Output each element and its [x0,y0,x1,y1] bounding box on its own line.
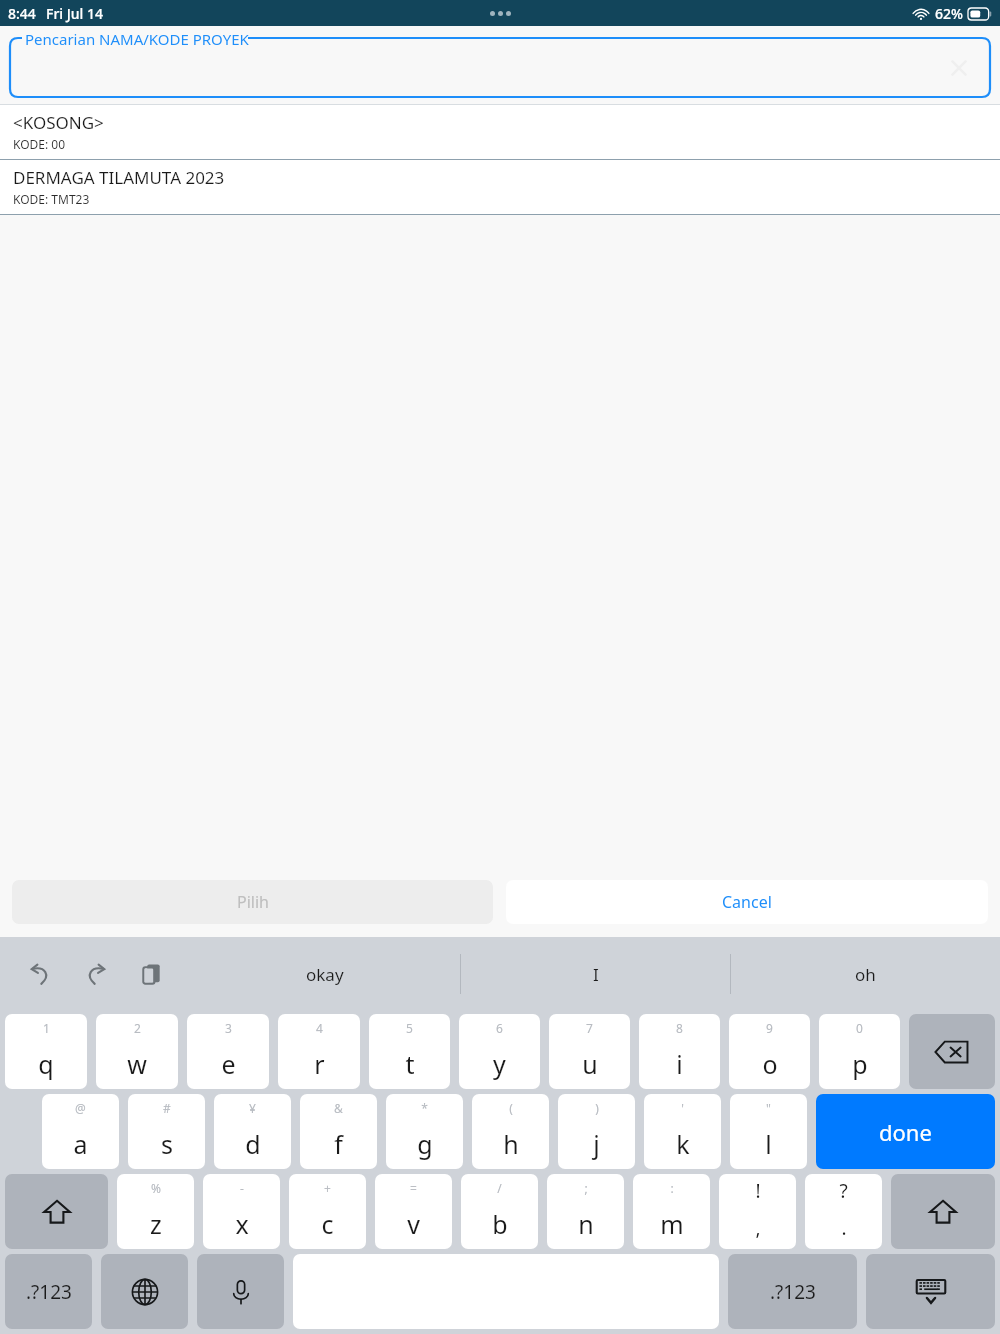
staticText: I [593,963,599,986]
button[interactable]: ? [805,1174,882,1249]
staticText: ; [584,1180,588,1196]
staticText: * [421,1100,428,1116]
staticText: p [852,1047,868,1081]
button[interactable]: ¥ [214,1094,291,1169]
button[interactable]: 1 [5,1014,87,1089]
staticText: b [492,1207,508,1241]
staticText: d [245,1127,261,1161]
staticText: g [417,1127,433,1161]
staticText: 8 [676,1020,683,1036]
button[interactable]: * [386,1094,463,1169]
button[interactable]: ' [644,1094,721,1169]
button[interactable]: & [300,1094,377,1169]
button[interactable]: ; [547,1174,624,1249]
button[interactable]: Pilih [12,880,493,924]
button[interactable]: " [730,1094,807,1169]
button[interactable]: + [289,1174,366,1249]
staticText: ) [595,1100,599,1116]
staticText: .?123 [26,1279,72,1305]
button[interactable]: .?123 [5,1254,92,1329]
staticText: 8:44 [8,4,36,23]
staticText: n [578,1207,594,1241]
staticText: q [38,1047,54,1081]
button[interactable]: 0 [819,1014,900,1089]
staticText: 62% [935,4,963,23]
staticText: 6 [496,1020,503,1036]
button[interactable]: oh [731,949,1000,999]
button[interactable]: okay [190,949,460,999]
button[interactable]: 8 [639,1014,720,1089]
button[interactable]: <KOSONG> [0,105,1000,159]
button[interactable]: Cancel [506,880,988,924]
button[interactable]: Switch language [101,1254,188,1329]
staticText: ' [681,1100,684,1116]
staticText: e [221,1047,236,1081]
staticText: l [765,1127,772,1161]
staticText: s [161,1127,173,1161]
staticText: t [405,1047,415,1081]
staticText: k [676,1127,690,1161]
button[interactable]: / [461,1174,538,1249]
staticText: Fri Jul 14 [46,4,104,23]
button[interactable]: Shift [5,1174,108,1249]
button[interactable]: = [375,1174,452,1249]
staticText: ¥ [249,1100,256,1116]
button[interactable]: : [633,1174,710,1249]
staticText: z [150,1207,162,1241]
staticText: # [163,1100,171,1116]
staticText: y [493,1047,506,1081]
staticText: x [235,1207,249,1241]
staticText: DERMAGA TILAMUTA 2023 [13,166,225,189]
button[interactable]: % [117,1174,194,1249]
button[interactable]: 5 [369,1014,450,1089]
staticText: 7 [586,1020,593,1036]
staticText: = [410,1180,417,1196]
staticText: KODE: 00 [13,136,66,152]
button[interactable]: 9 [729,1014,810,1089]
staticText: % [151,1180,161,1196]
staticText: , [755,1215,761,1241]
staticText: 1 [43,1020,50,1036]
button[interactable]: - [203,1174,280,1249]
button[interactable]: ( [472,1094,549,1169]
staticText: 3 [225,1020,232,1036]
button[interactable]: ! [719,1174,796,1249]
staticText: / [497,1180,502,1196]
staticText: 9 [766,1020,773,1036]
staticText: 5 [406,1020,413,1036]
button[interactable]: done [816,1094,995,1169]
staticText: done [879,1117,932,1147]
button[interactable]: Shift [891,1174,995,1249]
button[interactable]: Redo [78,956,114,992]
staticText: Pencarian NAMA/KODE PROYEK [25,29,249,49]
button[interactable]: I [461,949,730,999]
button[interactable]: DERMAGA TILAMUTA 2023 [0,160,1000,214]
button[interactable]: 7 [549,1014,630,1089]
staticText: .?123 [770,1279,816,1305]
staticText: 2 [134,1020,141,1036]
staticText: : [670,1180,674,1196]
staticText: h [503,1127,519,1161]
staticText: + [324,1180,331,1196]
staticText: @ [75,1100,86,1116]
button[interactable]: ) [558,1094,635,1169]
button[interactable]: .?123 [728,1254,857,1329]
button[interactable]: 3 [187,1014,269,1089]
staticText: & [334,1100,343,1116]
button[interactable]: Voice input [197,1254,284,1329]
button[interactable]: 2 [96,1014,178,1089]
button[interactable]: 4 [278,1014,360,1089]
button[interactable]: Paste [134,956,170,992]
button[interactable]: 6 [459,1014,540,1089]
staticText: okay [306,963,344,986]
button[interactable]: Hide keyboard [866,1254,995,1329]
staticText: r [314,1047,325,1081]
button[interactable]: @ [42,1094,119,1169]
button[interactable]: Backspace [909,1014,995,1089]
staticText: f [334,1127,343,1161]
staticText: ( [509,1100,513,1116]
button[interactable]: # [128,1094,205,1169]
button[interactable]: Undo [22,956,58,992]
